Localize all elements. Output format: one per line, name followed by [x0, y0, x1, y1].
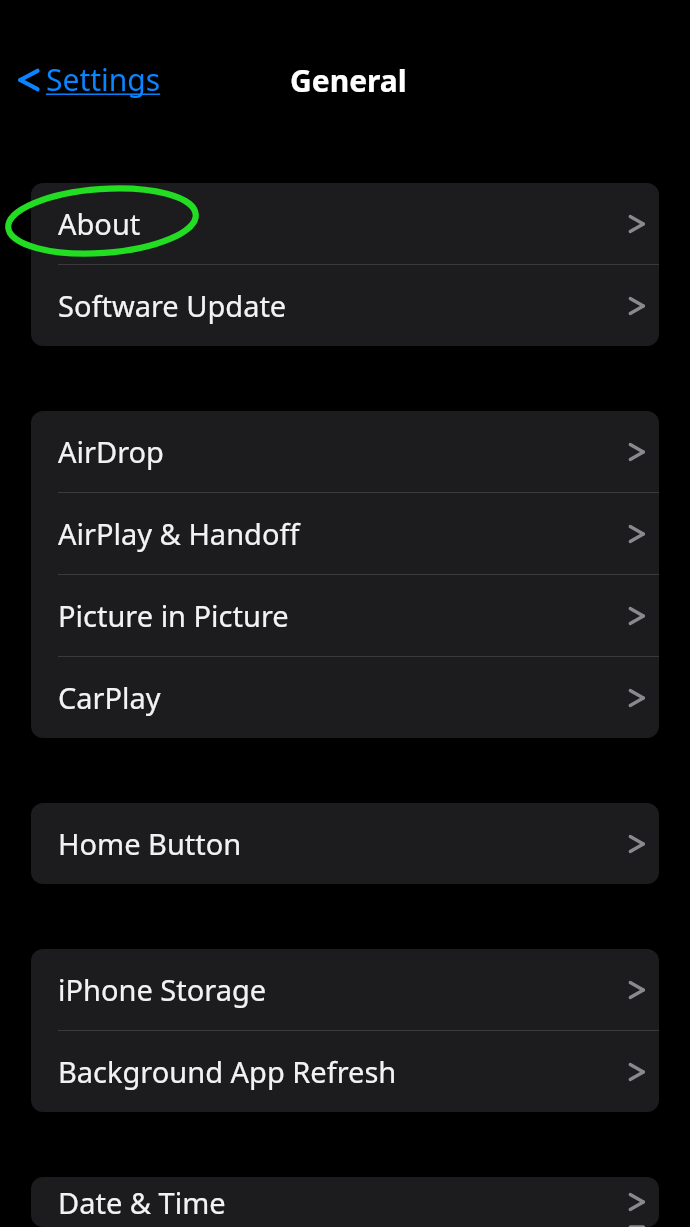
button[interactable]: Picture in Picture [31, 575, 659, 656]
staticText: Home Button [58, 824, 242, 863]
button[interactable]: CarPlay [31, 657, 659, 738]
staticText: Date & Time [58, 1183, 226, 1222]
staticText: About [58, 204, 141, 243]
staticText: Settings [46, 59, 161, 100]
button[interactable]: AirDrop [31, 411, 659, 492]
button[interactable]: iPhone Storage [31, 949, 659, 1030]
button[interactable]: Software Update [31, 265, 659, 346]
button[interactable]: Settings [0, 53, 173, 106]
staticText: Software Update [58, 286, 287, 325]
staticText: AirPlay & Handoff [58, 514, 300, 553]
button[interactable]: Home Button [31, 803, 659, 884]
staticText: AirDrop [58, 432, 164, 471]
staticText: iPhone Storage [58, 970, 267, 1009]
staticText: Background App Refresh [58, 1052, 397, 1091]
button[interactable]: About [31, 183, 659, 264]
staticText: CarPlay [58, 678, 161, 717]
button[interactable]: Date & Time [31, 1177, 659, 1227]
button[interactable]: Background App Refresh [31, 1031, 659, 1112]
staticText: Picture in Picture [58, 596, 289, 635]
staticText: General [290, 60, 407, 101]
button[interactable]: AirPlay & Handoff [31, 493, 659, 574]
